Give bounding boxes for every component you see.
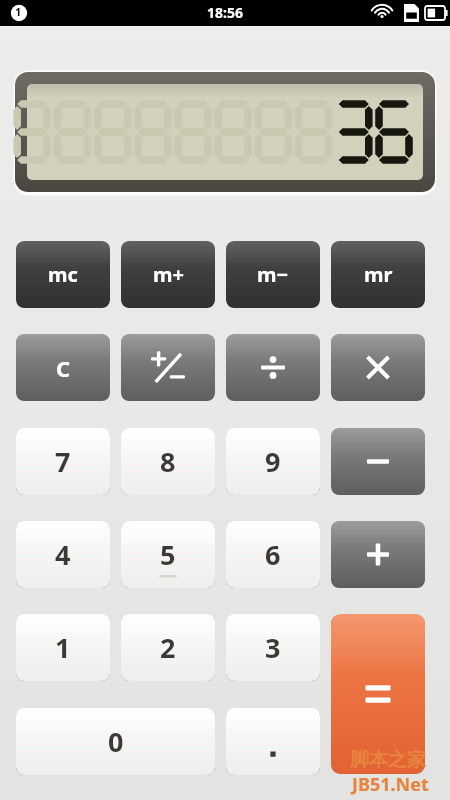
staticText: m+ bbox=[153, 261, 184, 288]
staticText: 1 bbox=[15, 4, 22, 19]
staticText: 9 bbox=[265, 443, 281, 480]
staticText: 4 bbox=[55, 536, 71, 573]
staticText: 3 bbox=[265, 629, 281, 666]
button[interactable]: 2 bbox=[121, 614, 215, 681]
button[interactable]: mc bbox=[16, 241, 110, 308]
button[interactable]: 8 bbox=[121, 428, 215, 495]
button[interactable]: 5 bbox=[121, 521, 215, 588]
button[interactable]: mr bbox=[331, 241, 425, 308]
button[interactable]: Equals bbox=[331, 614, 425, 774]
button[interactable]: 3 bbox=[226, 614, 320, 681]
staticText: 脚本之家 bbox=[350, 748, 426, 772]
button[interactable]: 9 bbox=[226, 428, 320, 495]
button[interactable]: 1 bbox=[16, 614, 110, 681]
button[interactable]: m− bbox=[226, 241, 320, 308]
staticText: 0 bbox=[108, 723, 124, 760]
staticText: 2 bbox=[160, 629, 176, 666]
staticText: JB51.Net bbox=[352, 772, 429, 797]
button[interactable]: Divide bbox=[226, 334, 320, 401]
button[interactable]: Multiply bbox=[331, 334, 425, 401]
button[interactable]: 4 bbox=[16, 521, 110, 588]
staticText: m− bbox=[257, 261, 289, 288]
button[interactable]: 6 bbox=[226, 521, 320, 588]
button[interactable]: C bbox=[16, 334, 110, 401]
button[interactable]: 0 bbox=[16, 708, 215, 775]
button[interactable]: Plus bbox=[331, 521, 425, 588]
staticText: 8 bbox=[160, 443, 176, 480]
staticText: 1 bbox=[55, 629, 71, 666]
staticText: mc bbox=[48, 261, 78, 288]
button[interactable]: Minus bbox=[331, 428, 425, 495]
staticText: 18:56 bbox=[0, 3, 450, 23]
button[interactable]: 7 bbox=[16, 428, 110, 495]
button[interactable]: m+ bbox=[121, 241, 215, 308]
staticText: 6 bbox=[265, 536, 281, 573]
button[interactable]: Decimal point bbox=[226, 708, 320, 775]
staticText: 5 bbox=[160, 536, 176, 573]
staticText: 7 bbox=[55, 443, 71, 480]
button[interactable]: Plus minus bbox=[121, 334, 215, 401]
staticText: C bbox=[56, 353, 71, 383]
staticText: mr bbox=[364, 261, 393, 288]
